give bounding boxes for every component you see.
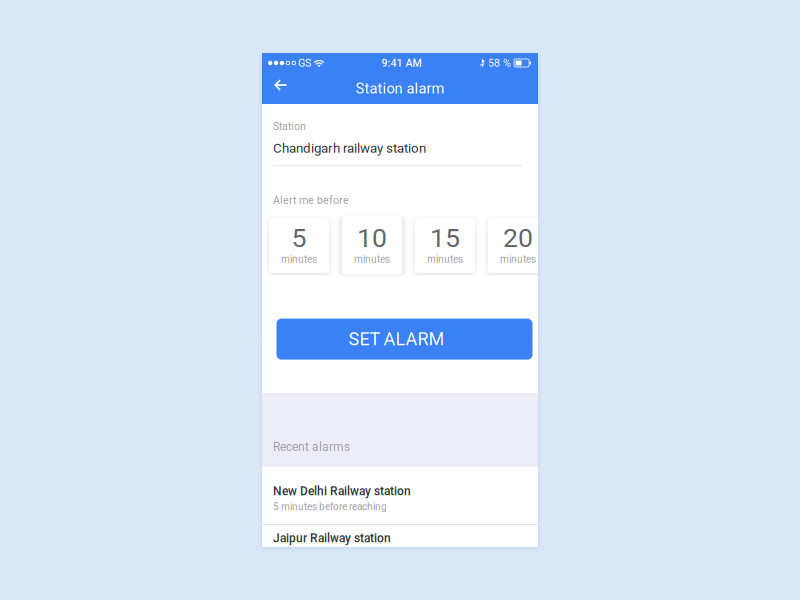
button[interactable]: 15 — [415, 218, 475, 273]
staticText: 10 — [357, 222, 387, 253]
staticText: 5 — [291, 222, 306, 253]
button[interactable]: New Delhi Railway station — [262, 467, 538, 524]
button[interactable]: 5 — [269, 218, 329, 273]
staticText: minutes — [427, 253, 463, 265]
staticText: New Delhi Railway station — [273, 484, 411, 498]
button[interactable]: SET ALARM — [276, 319, 532, 360]
staticText: 5 minutes before reaching — [273, 501, 387, 513]
staticText: Alert me before — [273, 194, 349, 207]
button[interactable]: 10 — [342, 216, 402, 275]
staticText: Station alarm — [355, 80, 444, 97]
staticText: minutes — [281, 253, 317, 265]
button[interactable]: 20 — [488, 218, 548, 273]
staticText: 15 — [430, 222, 460, 253]
staticText: SET ALARM — [348, 329, 444, 350]
staticText: Station — [273, 120, 306, 132]
staticText: minutes — [500, 253, 536, 265]
staticText: minutes — [354, 253, 390, 265]
button[interactable]: Jaipur Railway station — [262, 525, 538, 547]
staticText: 9:41 AM — [381, 57, 421, 69]
staticText: 58 % — [488, 57, 511, 69]
staticText: GS — [298, 57, 311, 69]
staticText: 20 — [503, 222, 533, 253]
button[interactable]: Back — [262, 73, 295, 104]
staticText: Chandigarh railway station — [273, 140, 426, 156]
staticText: Jaipur Railway station — [273, 531, 391, 545]
staticText: Recent alarms — [273, 440, 350, 454]
